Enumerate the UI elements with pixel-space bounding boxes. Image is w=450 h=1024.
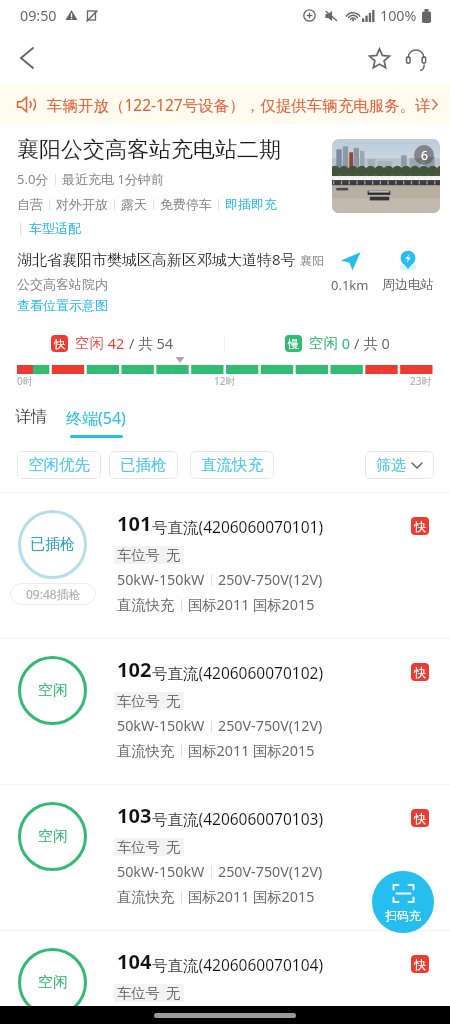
staticText: 无: [166, 838, 181, 856]
button[interactable]: 详情: [15, 407, 51, 427]
staticText: 详情: [15, 407, 47, 427]
button[interactable]: Customer support: [398, 40, 434, 76]
staticText: 直流快充: [117, 596, 175, 614]
staticText: 国标2011 国标2015: [188, 595, 315, 615]
staticText: 空闲: [38, 827, 68, 846]
button[interactable]: Navigate: [331, 249, 369, 294]
staticText: 湖北省襄阳市樊城区高新区邓城大道特8号: [17, 249, 296, 269]
button[interactable]: 终端(54): [66, 407, 126, 438]
staticText: 襄阳公交高客站充电站二期: [17, 136, 281, 164]
staticText: 快: [54, 337, 65, 351]
staticText: / 共 54: [129, 333, 174, 353]
staticText: 即插即充: [225, 196, 277, 212]
staticText: 号直流(4206060070101): [152, 516, 324, 537]
staticText: 空闲优先: [28, 455, 90, 475]
staticText: 103: [117, 802, 152, 829]
button[interactable]: 空闲: [0, 931, 450, 1024]
staticText: 号直流(4206060070103): [152, 808, 324, 829]
staticText: 50kW-150kW: [117, 1008, 205, 1024]
staticText: 快: [414, 519, 426, 534]
button[interactable]: 空闲: [0, 639, 450, 784]
button[interactable]: Favorite: [361, 40, 397, 76]
staticText: 国标2011 国标2015: [188, 741, 315, 761]
staticText: 车位号: [117, 546, 160, 564]
staticText: 直流快充: [117, 888, 175, 906]
staticText: 自营: [17, 196, 43, 212]
staticText: 104: [117, 948, 152, 975]
staticText: 车位号: [117, 692, 160, 710]
staticText: 5.0分: [17, 170, 49, 188]
staticText: 周边电站: [382, 276, 434, 292]
staticText: 公交高客站院内: [17, 276, 108, 292]
staticText: 最近充电 1分钟前: [62, 170, 164, 188]
staticText: 终端(54): [66, 407, 126, 429]
staticText: 空闲: [309, 334, 338, 352]
staticText: 快: [414, 957, 426, 972]
button[interactable]: 湖北省襄阳市樊城区高新区邓城大道特8号: [17, 249, 331, 313]
button[interactable]: 已插枪: [109, 451, 178, 479]
staticText: 扫码充: [385, 908, 421, 923]
staticText: 0: [338, 333, 354, 353]
staticText: 已插枪: [120, 455, 167, 475]
staticText: 车位号: [117, 984, 160, 1002]
button[interactable]: 筛选: [365, 451, 434, 479]
staticText: 车位号: [117, 838, 160, 856]
staticText: 国标2011 国标2015: [188, 887, 315, 907]
staticText: 50kW-150kW: [117, 862, 205, 881]
staticText: 对外开放: [56, 196, 108, 212]
staticText: 号直流(4206060070104): [152, 954, 324, 975]
staticText: 快: [414, 811, 426, 826]
staticText: 0.1km: [331, 276, 369, 294]
staticText: 号直流(4206060070102): [152, 662, 324, 683]
staticText: 空闲: [38, 681, 68, 700]
button[interactable]: Scan to charge: [372, 871, 434, 933]
staticText: 50kW-150kW: [117, 716, 205, 735]
staticText: 车型适配: [29, 220, 81, 236]
staticText: 250V-750V(12V): [218, 862, 323, 881]
staticText: 车辆开放（122-127号设备），仅提供车辆充电服务。详: [47, 94, 431, 115]
staticText: 空闲: [38, 973, 68, 992]
staticText: 42: [104, 333, 129, 353]
staticText: 100%: [380, 6, 417, 25]
button[interactable]: 直流快充: [190, 451, 274, 479]
staticText: 慢: [288, 337, 299, 351]
staticText: 无: [166, 546, 181, 564]
staticText: 0时: [17, 374, 33, 388]
staticText: 无: [166, 692, 181, 710]
staticText: 筛选: [376, 456, 406, 475]
staticText: 快: [414, 665, 426, 680]
button[interactable]: 空闲优先: [17, 451, 101, 479]
staticText: 23时: [410, 374, 432, 388]
staticText: 102: [117, 656, 152, 683]
staticText: 查看位置示意图: [17, 297, 108, 313]
staticText: 50kW-150kW: [117, 570, 205, 589]
button[interactable]: 空闲: [0, 785, 450, 930]
staticText: 6: [421, 147, 428, 163]
staticText: 露天: [121, 196, 147, 212]
staticText: 09:50: [20, 6, 57, 25]
staticText: 12时: [214, 374, 236, 388]
button[interactable]: 已插枪: [0, 493, 450, 638]
staticText: 09:48插枪: [26, 586, 81, 602]
staticText: 250V-750V(12V): [218, 1008, 323, 1024]
button[interactable]: 车辆开放（122-127号设备），仅提供车辆充电服务。详: [0, 85, 450, 124]
staticText: 直流快充: [117, 742, 175, 760]
staticText: 已插枪: [30, 535, 75, 554]
button[interactable]: Nearby stations: [382, 249, 434, 292]
staticText: 空闲: [75, 334, 104, 352]
staticText: 襄阳: [300, 253, 324, 268]
staticText: 250V-750V(12V): [218, 570, 323, 589]
button[interactable]: Station photos: [332, 139, 440, 213]
staticText: 无: [166, 984, 181, 1002]
staticText: 250V-750V(12V): [218, 716, 323, 735]
staticText: 101: [117, 510, 152, 537]
staticText: |: [17, 219, 25, 237]
staticText: 免费停车: [160, 196, 212, 212]
staticText: / 共 0: [354, 333, 390, 353]
button[interactable]: Back: [9, 40, 45, 76]
staticText: 直流快充: [201, 455, 263, 475]
